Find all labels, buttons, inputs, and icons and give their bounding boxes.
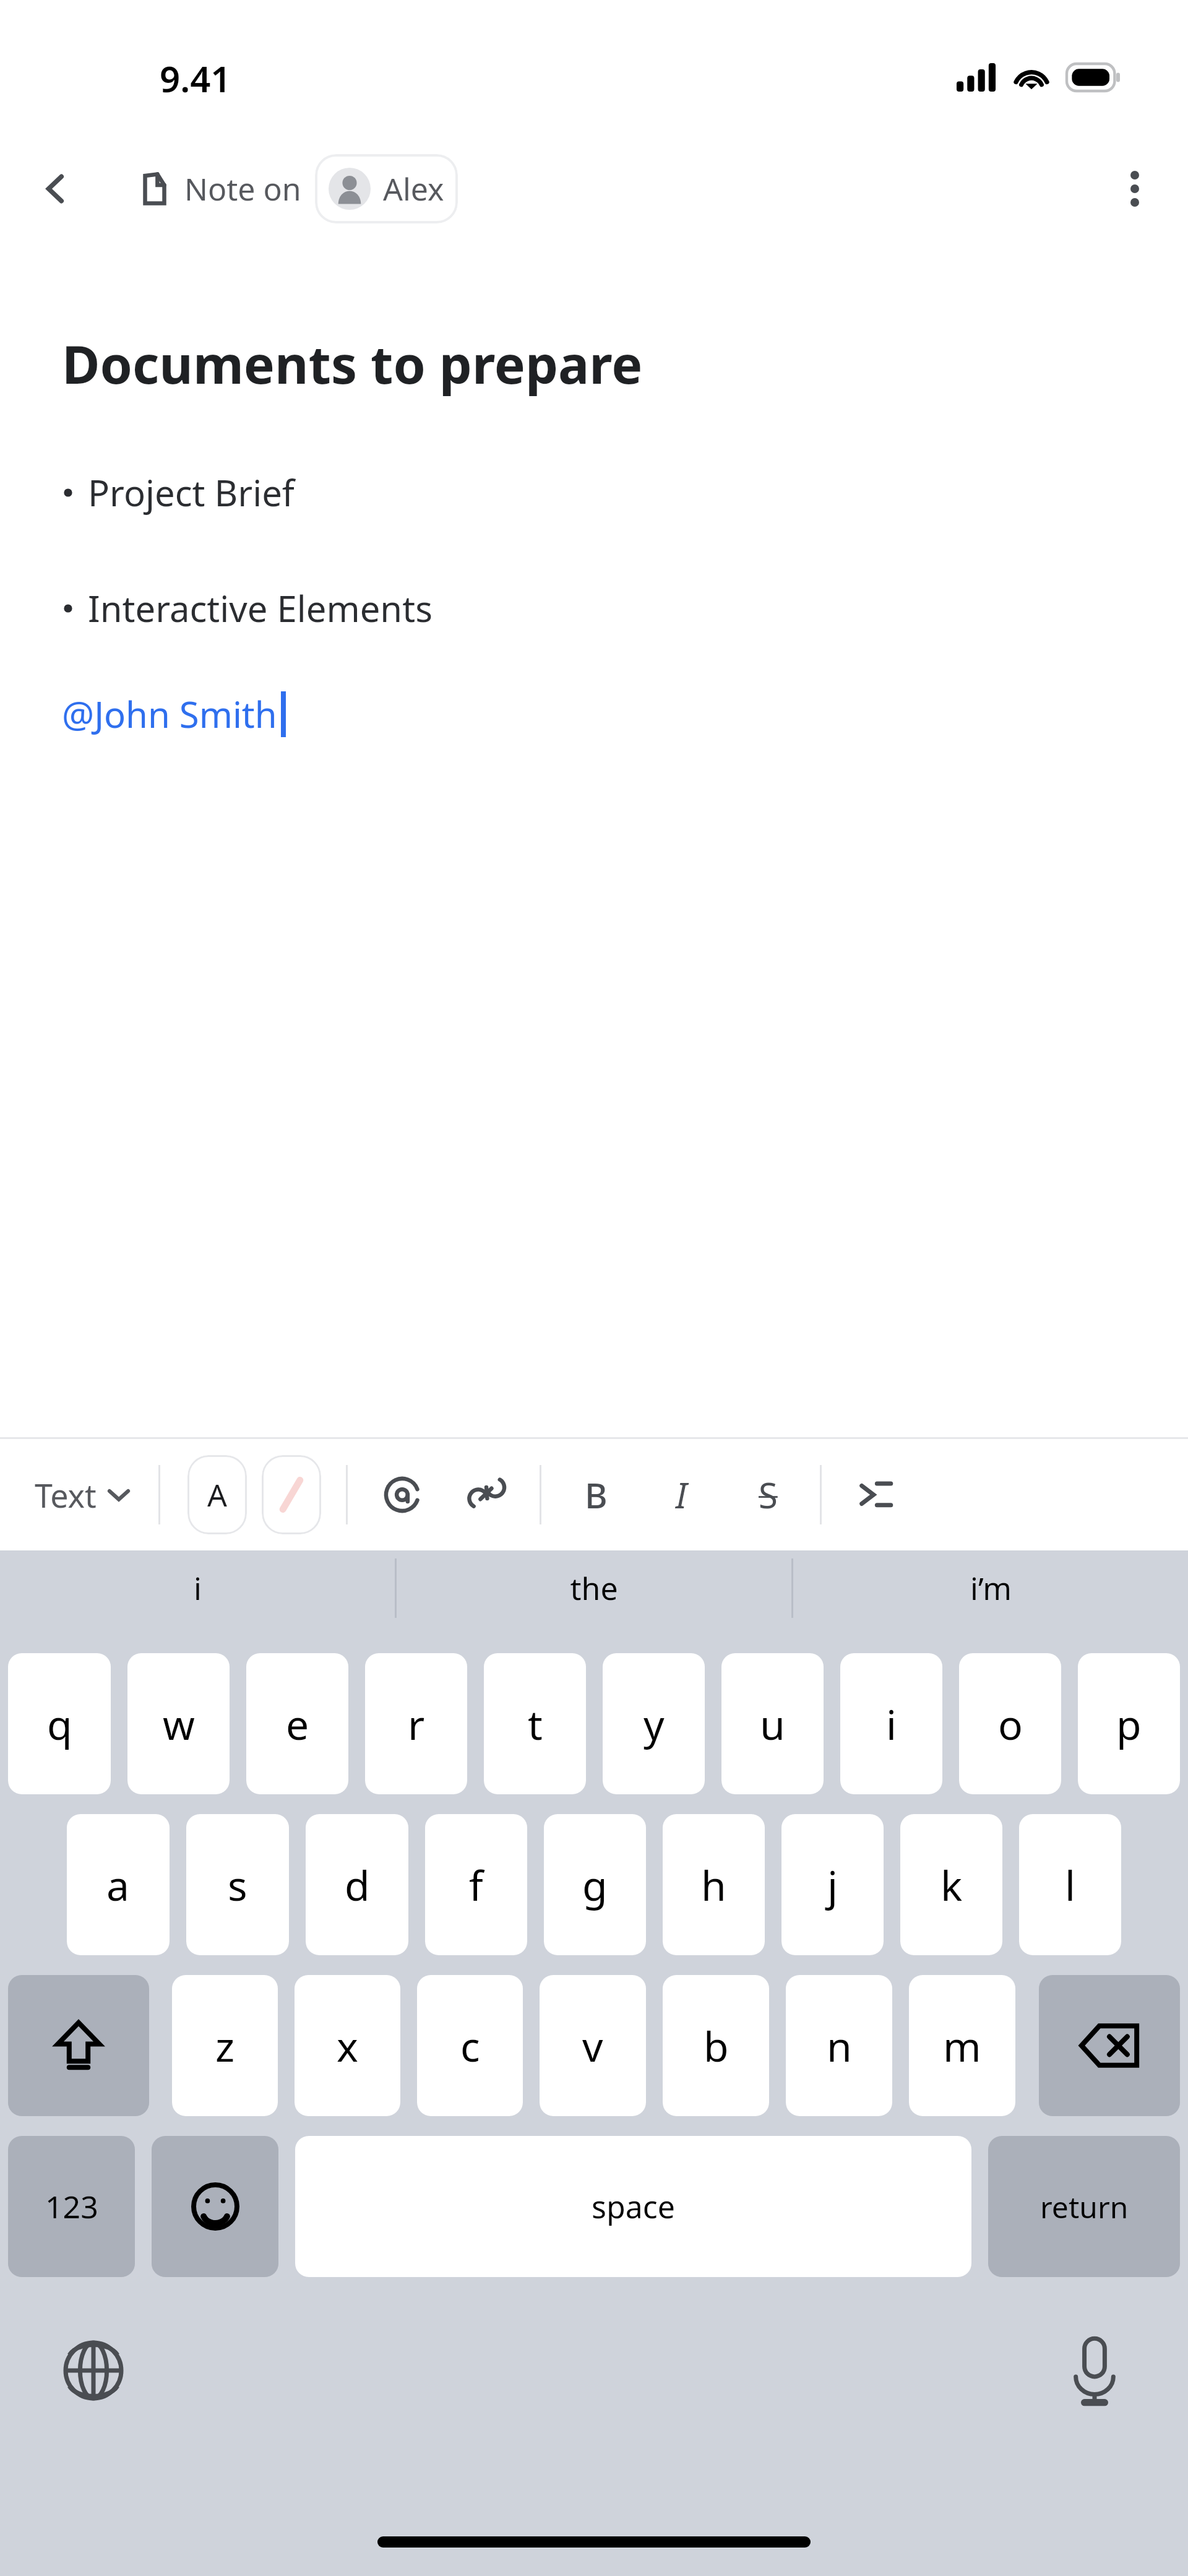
button[interactable]: Note on [141,154,458,223]
button[interactable]: Text [35,1473,130,1517]
staticText: m [943,2018,981,2073]
staticText: v [582,2018,603,2073]
button[interactable]: Alex [315,154,458,223]
staticText: u [760,1696,785,1752]
button[interactable]: Documents to prepare [62,328,643,399]
staticText: Text [35,1473,97,1517]
staticText: Note on [184,168,301,210]
button[interactable]: More options [1103,157,1167,221]
button[interactable]: the [397,1550,791,1626]
staticText: o [998,1696,1023,1752]
button[interactable]: Italic [653,1460,710,1529]
button[interactable]: w [127,1653,230,1794]
button[interactable]: Return [988,2136,1180,2277]
staticText: S [759,1471,778,1518]
staticText: i [886,1696,897,1752]
button[interactable] [262,1455,321,1534]
button[interactable]: d [306,1814,408,1955]
staticText: Interactive Elements [88,584,433,633]
button[interactable]: k [900,1814,1002,1955]
staticText: k [940,1857,963,1913]
button[interactable]: h [663,1814,765,1955]
button[interactable]: Bold [567,1460,624,1529]
button[interactable]: z [172,1975,278,2116]
staticText: t [528,1696,543,1752]
button[interactable]: Backspace [1039,1975,1180,2116]
staticText: r [408,1696,425,1752]
staticText: i [194,1567,202,1609]
staticText: g [582,1857,608,1913]
button[interactable]: f [425,1814,527,1955]
button[interactable]: t [484,1653,586,1794]
staticText: b [704,2018,729,2073]
staticText: A [207,1474,227,1516]
button[interactable]: v [540,1975,646,2116]
button[interactable]: @John Smith [62,689,277,738]
staticText: h [701,1857,726,1913]
staticText: Project Brief [88,468,295,517]
button[interactable]: space [295,2136,971,2277]
button[interactable]: p [1078,1653,1180,1794]
button[interactable]: x [295,1975,400,2116]
staticText: i’m [970,1567,1012,1609]
button[interactable]: q [8,1653,111,1794]
button[interactable]: r [365,1653,467,1794]
button[interactable]: Shift [8,1975,149,2116]
staticText: return [1040,2187,1129,2227]
staticText: z [215,2018,235,2073]
staticText: e [286,1696,309,1752]
staticText: j [827,1857,838,1913]
staticText: 123 [45,2185,98,2228]
staticText: a [106,1857,130,1913]
staticText: c [460,2018,480,2073]
button[interactable]: i [840,1653,942,1794]
button[interactable]: a [67,1814,170,1955]
staticText: n [827,2018,852,2073]
button[interactable]: o [959,1653,1061,1794]
staticText: space [592,2185,675,2228]
staticText: 9.41 [160,54,231,103]
button[interactable]: j [781,1814,884,1955]
button[interactable]: Strikethrough [739,1460,796,1529]
button[interactable]: Link [458,1460,515,1529]
staticText: y [643,1696,665,1752]
button[interactable]: b [663,1975,769,2116]
staticText: x [337,2018,358,2073]
button[interactable]: m [909,1975,1015,2116]
staticText: f [469,1857,483,1913]
button[interactable]: i [0,1550,395,1626]
button[interactable]: Numbers [8,2136,135,2277]
button[interactable]: g [544,1814,646,1955]
staticText: B [585,1471,608,1518]
button[interactable]: Back [22,155,90,223]
staticText: Alex [383,168,444,210]
button[interactable]: Emoji [152,2136,278,2277]
button[interactable]: A [187,1455,247,1534]
button[interactable]: Change keyboard [53,2330,134,2411]
staticText: q [47,1696,72,1752]
button[interactable]: e [246,1653,348,1794]
staticText: d [345,1857,370,1913]
button[interactable]: Mention [374,1460,431,1529]
staticText: p [1116,1696,1142,1752]
button[interactable]: y [603,1653,705,1794]
button[interactable]: Code [846,1460,903,1529]
button[interactable]: u [721,1653,824,1794]
staticText: l [1065,1857,1076,1913]
staticText: w [163,1696,195,1752]
staticText: s [228,1857,247,1913]
button[interactable]: c [417,1975,523,2116]
button[interactable]: s [186,1814,289,1955]
button[interactable]: Dictate [1054,2330,1135,2411]
button[interactable]: l [1019,1814,1121,1955]
button[interactable]: n [786,1975,892,2116]
staticText: I [676,1471,687,1518]
staticText: the [570,1567,618,1609]
button[interactable]: i’m [793,1550,1188,1626]
